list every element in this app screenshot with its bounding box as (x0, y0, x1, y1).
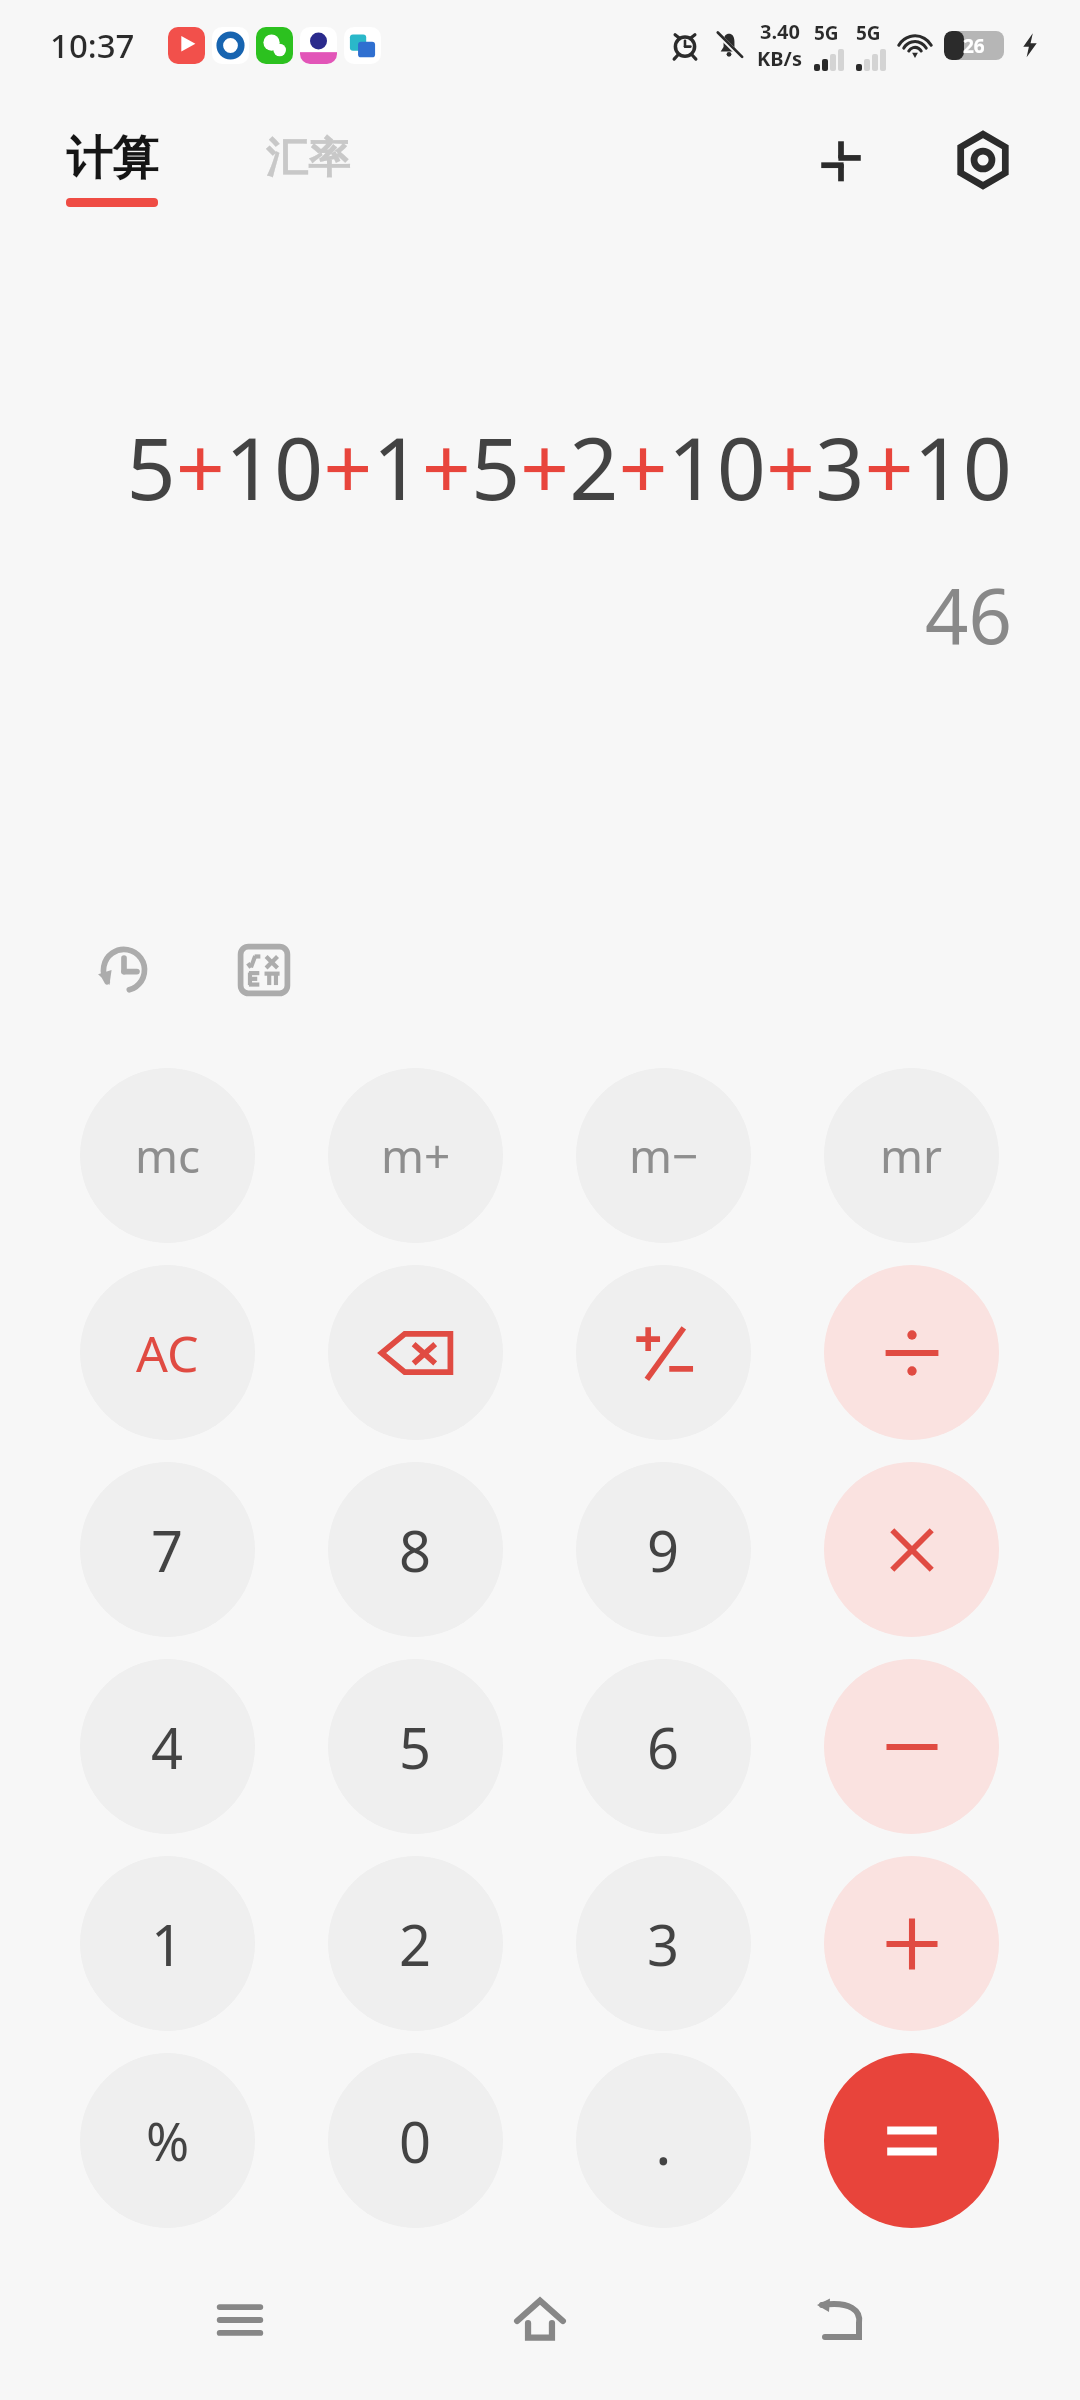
button[interactable]: Toggle sign (576, 1265, 751, 1440)
button[interactable]: 2 (328, 1856, 503, 2031)
staticText: 计算 (66, 130, 158, 188)
staticText: mc (135, 1124, 201, 1187)
staticText: 3.40 (760, 18, 800, 45)
button[interactable]: History (82, 928, 166, 1012)
button[interactable]: 汇率 (266, 132, 350, 185)
staticText: KB/s (757, 45, 802, 72)
button[interactable]: % (80, 2053, 255, 2228)
button[interactable]: Backspace (328, 1265, 503, 1440)
button[interactable]: . (576, 2053, 751, 2228)
button[interactable]: Collapse (798, 117, 884, 203)
button[interactable]: 计算 (66, 130, 158, 207)
button[interactable]: m− (576, 1068, 751, 1243)
button[interactable]: 4 (80, 1659, 255, 1834)
button[interactable]: 6 (576, 1659, 751, 1834)
button[interactable]: Multiply (824, 1462, 999, 1637)
button[interactable]: Divide (824, 1265, 999, 1440)
staticText: 9 (647, 1512, 680, 1588)
staticText: 5G (814, 20, 839, 46)
button[interactable]: m+ (328, 1068, 503, 1243)
button[interactable]: Equals (824, 2053, 999, 2228)
staticText: 6 (647, 1709, 680, 1785)
button[interactable]: AC (80, 1265, 255, 1440)
staticText: 汇率 (266, 132, 350, 185)
button[interactable]: 8 (328, 1462, 503, 1637)
staticText: . (655, 2099, 672, 2183)
staticText: 8 (399, 1512, 432, 1588)
button[interactable]: mc (80, 1068, 255, 1243)
button[interactable]: Back (780, 2260, 900, 2380)
staticText: 1 (151, 1906, 184, 1982)
staticText: 2 (399, 1906, 432, 1982)
staticText: AC (136, 1319, 199, 1387)
button[interactable]: Add (824, 1856, 999, 2031)
staticText: 46 (68, 563, 1012, 667)
staticText: 7 (151, 1512, 184, 1588)
staticText: 5+10+1+5+2+10+3+10 (68, 408, 1012, 525)
button[interactable]: Recent apps (180, 2260, 300, 2380)
staticText: mr (880, 1124, 943, 1187)
staticText: 5 (399, 1709, 432, 1785)
staticText: 5G (856, 20, 881, 46)
staticText: m+ (381, 1124, 451, 1187)
button[interactable]: 9 (576, 1462, 751, 1637)
button[interactable]: 3 (576, 1856, 751, 2031)
button[interactable]: mr (824, 1068, 999, 1243)
staticText: 10:37 (50, 23, 135, 68)
staticText: 3 (647, 1906, 680, 1982)
button[interactable]: 7 (80, 1462, 255, 1637)
staticText: m− (629, 1124, 699, 1187)
staticText: % (146, 2105, 190, 2176)
button[interactable]: 0 (328, 2053, 503, 2228)
staticText: 26 (963, 33, 985, 59)
button[interactable]: Subtract (824, 1659, 999, 1834)
staticText: 0 (399, 2103, 432, 2179)
button[interactable]: Home (480, 2260, 600, 2380)
button[interactable]: Settings (940, 117, 1026, 203)
button[interactable]: Scientific mode (222, 928, 306, 1012)
button[interactable]: 1 (80, 1856, 255, 2031)
staticText: 4 (151, 1709, 184, 1785)
button[interactable]: 5 (328, 1659, 503, 1834)
